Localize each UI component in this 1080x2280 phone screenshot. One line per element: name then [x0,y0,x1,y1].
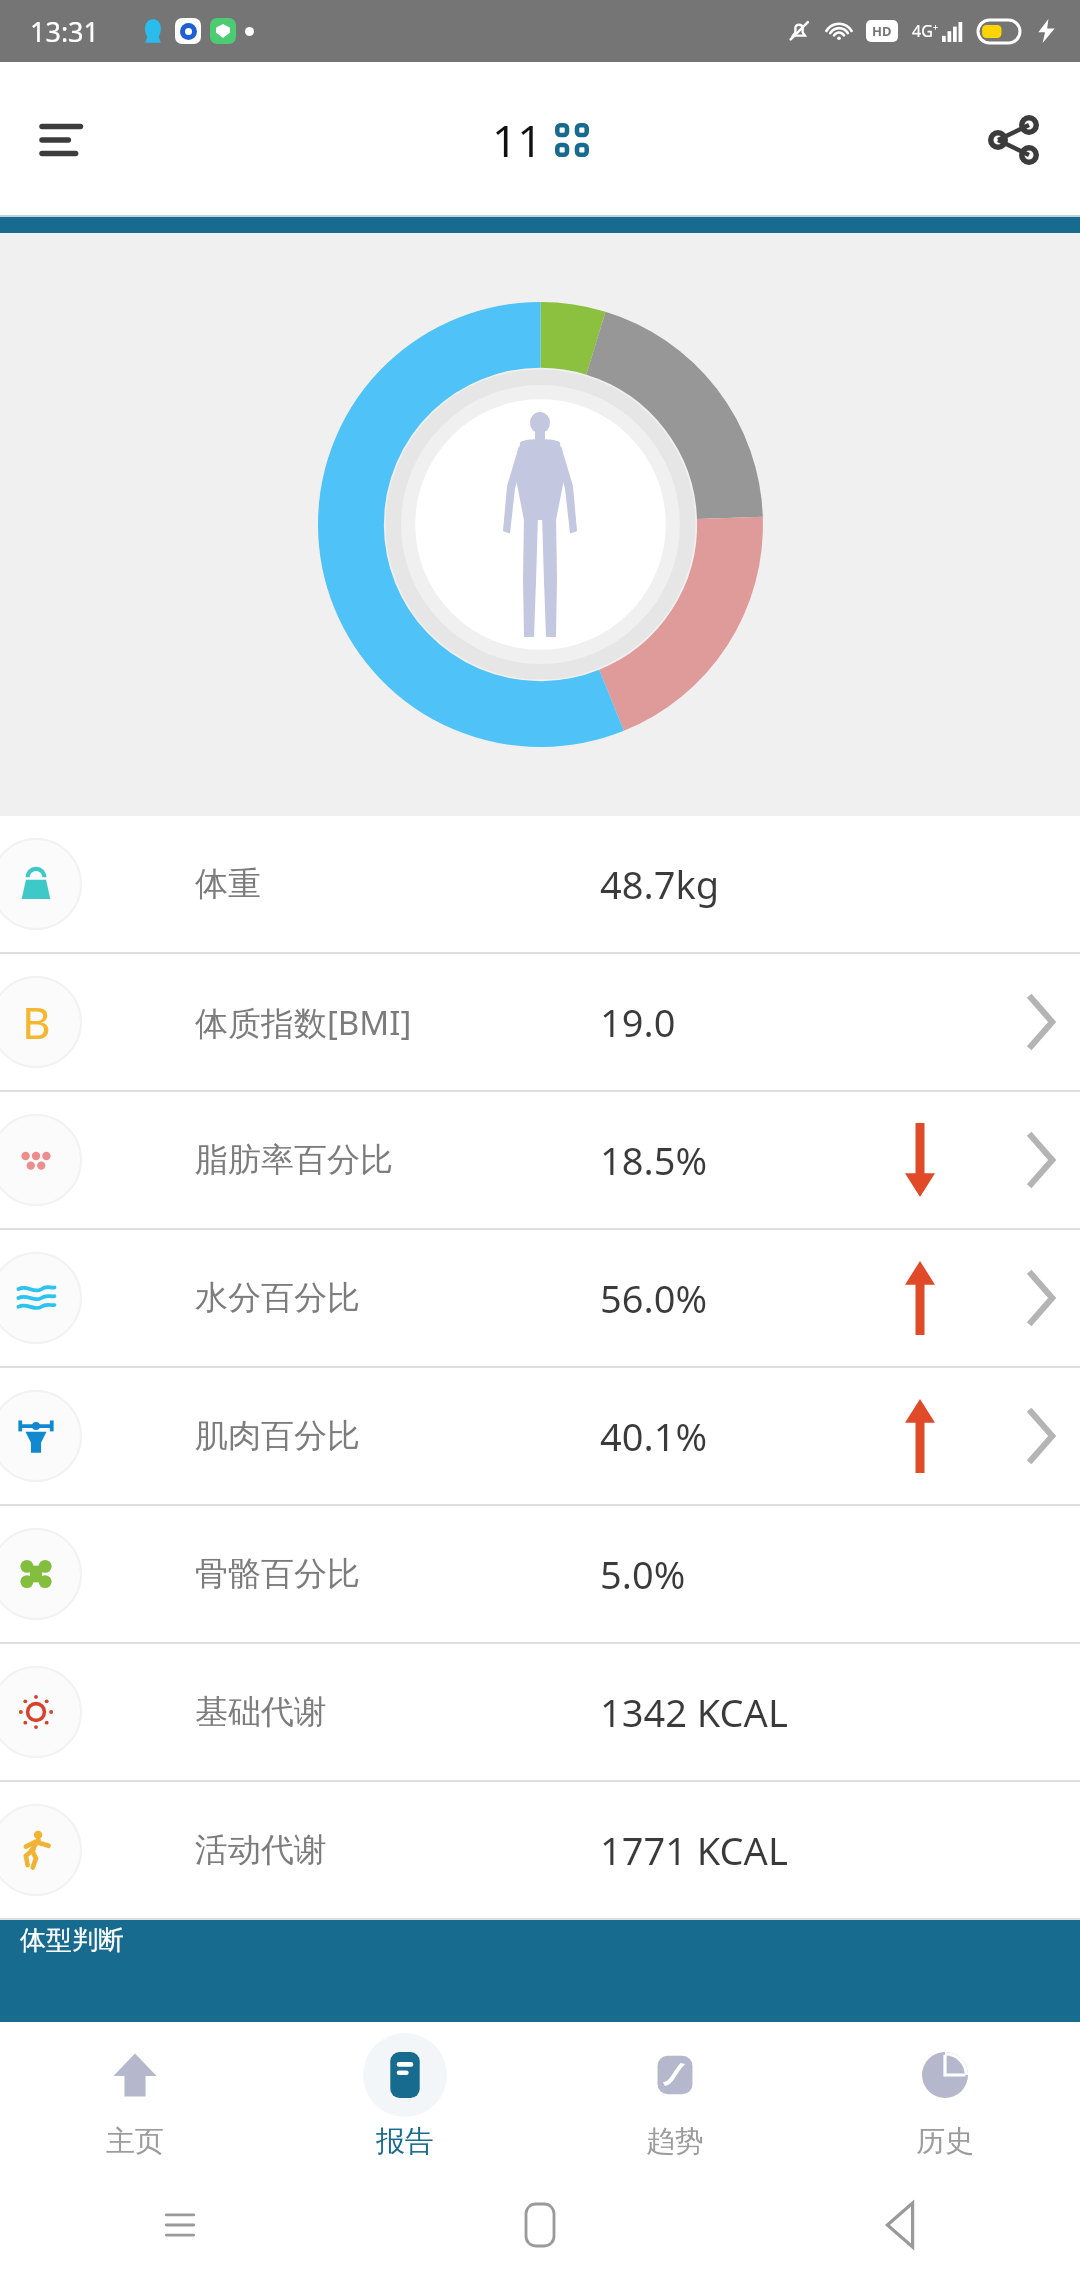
staticText: 脂肪率百分比 [195,1139,393,1181]
staticText: 体型判断 [20,1924,124,1957]
button[interactable]: 脂肪率百分比 [0,1092,1080,1228]
staticText: 1771 KCAL [600,1824,788,1876]
staticText: B [22,992,51,1052]
button[interactable]: 趋势 [540,2022,810,2170]
button[interactable]: Recents [0,2170,360,2280]
staticText: 历史 [916,2123,974,2160]
button[interactable]: Share [974,100,1054,180]
button[interactable]: 活动代谢 [0,1782,1080,1918]
staticText: 肌肉百分比 [195,1415,360,1457]
button[interactable]: 水分百分比 [0,1230,1080,1366]
button[interactable]: 体重 [0,816,1080,952]
button[interactable]: B [0,954,1080,1090]
button[interactable]: 主页 [0,2022,270,2170]
staticText: 5.0% [600,1548,686,1600]
button[interactable]: 肌肉百分比 [0,1368,1080,1504]
staticText: 40.1% [600,1410,707,1462]
staticText: 48.7kg [600,858,720,910]
button[interactable]: Menu [26,100,106,180]
staticText: 水分百分比 [195,1277,360,1319]
button[interactable]: 报告 [270,2022,540,2170]
staticText: 11 [492,110,543,170]
staticText: 体重 [195,863,261,905]
staticText: 报告 [376,2123,434,2160]
staticText: 趋势 [646,2123,704,2160]
staticText: 4G⁺ [912,20,939,42]
button[interactable]: Home [360,2170,720,2280]
button[interactable]: 骨骼百分比 [0,1506,1080,1642]
staticText: HD [872,22,892,40]
staticText: 18.5% [600,1134,707,1186]
staticText: 活动代谢 [195,1829,327,1871]
staticText: 13:31 [30,13,100,50]
button[interactable]: Back [720,2170,1080,2280]
staticText: 骨骼百分比 [195,1553,360,1595]
staticText: 19.0 [600,996,676,1048]
button[interactable]: 历史 [810,2022,1080,2170]
staticText: 56.0% [600,1272,707,1324]
staticText: 体质指数[BMI] [195,1000,412,1045]
staticText: 主页 [106,2123,164,2160]
staticText: 基础代谢 [195,1691,327,1733]
button[interactable]: 基础代谢 [0,1644,1080,1780]
staticText: 1342 KCAL [600,1686,788,1738]
